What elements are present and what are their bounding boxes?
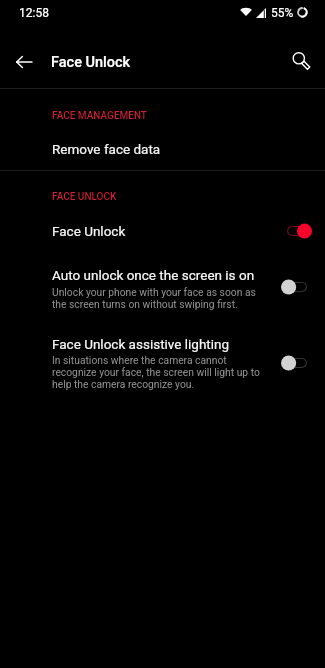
staticText: FACE UNLOCK (52, 191, 117, 203)
staticText: 12:58 (19, 6, 49, 20)
staticText: Face Unlock assistive lighting (52, 336, 230, 352)
staticText: Unlock your phone with your face as soon… (52, 286, 256, 310)
button[interactable]: Face Unlock assistive lighting (0, 328, 325, 398)
button[interactable]: Search (277, 42, 315, 80)
button[interactable]: Toggle on (281, 223, 312, 239)
button[interactable]: Auto unlock once the screen is on (0, 259, 325, 318)
staticText: Face Unlock (52, 223, 126, 239)
button[interactable]: Back (5, 43, 42, 80)
staticText: Face Unlock (51, 54, 131, 71)
button[interactable]: Face Unlock (0, 212, 325, 249)
staticText: In situations where the camera cannot re… (52, 354, 260, 390)
staticText: Remove face data (52, 141, 161, 157)
button[interactable]: Remove face data (0, 131, 325, 170)
staticText: Auto unlock once the screen is on (52, 267, 255, 283)
staticText: FACE MANAGEMENT (52, 110, 147, 122)
staticText: 55% (271, 6, 294, 20)
button[interactable]: Toggle off (281, 279, 312, 295)
button[interactable]: Toggle off (281, 355, 312, 371)
